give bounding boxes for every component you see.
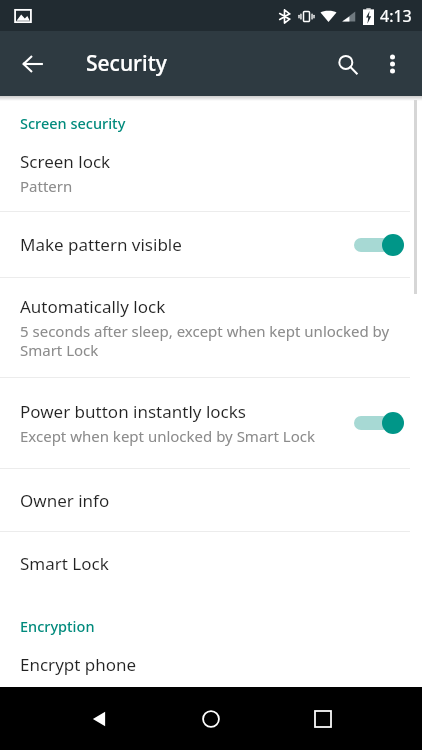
button[interactable]: Make pattern visible <box>0 212 422 277</box>
staticText: Encrypt phone <box>20 653 137 676</box>
staticText: Smart Lock <box>20 552 109 575</box>
staticText: Power button instantly locks <box>20 400 246 423</box>
staticText: Encryption <box>20 616 95 636</box>
button[interactable]: Back <box>76 696 122 742</box>
staticText: Pattern <box>20 176 73 196</box>
button[interactable]: Recent apps <box>300 696 346 742</box>
button[interactable]: Search <box>324 41 370 87</box>
button[interactable]: Navigate up <box>11 42 55 86</box>
staticText: Make pattern visible <box>20 233 182 256</box>
staticText: Owner info <box>20 489 110 512</box>
button[interactable]: Automatically lock <box>0 278 422 377</box>
button[interactable]: Power button instantly locks <box>0 378 422 468</box>
button[interactable]: Smart Lock <box>0 532 422 594</box>
button[interactable]: Owner info <box>0 469 422 531</box>
staticText: 5 seconds after sleep, except when kept … <box>20 321 390 360</box>
staticText: Screen security <box>20 113 126 133</box>
button[interactable]: Home <box>188 696 234 742</box>
staticText: 4:13 <box>380 5 412 27</box>
button[interactable]: Screen lock <box>0 139 422 211</box>
button[interactable]: Encrypt phone <box>0 642 422 687</box>
staticText: Except when kept unlocked by Smart Lock <box>20 426 315 446</box>
staticText: Security <box>86 49 167 78</box>
button[interactable]: More options <box>370 42 414 86</box>
staticText: Screen lock <box>20 150 111 173</box>
staticText: Automatically lock <box>20 295 166 318</box>
